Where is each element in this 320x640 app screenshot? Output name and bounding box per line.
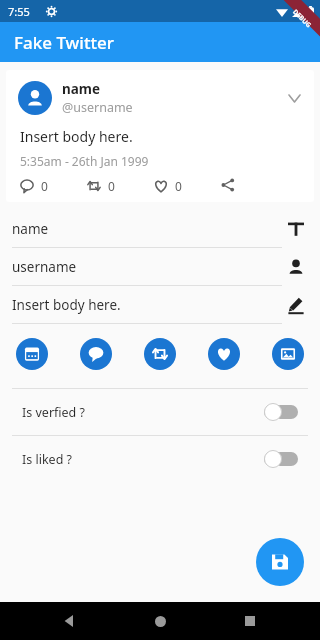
button[interactable]: Date (16, 338, 48, 370)
staticText: name (62, 80, 101, 98)
staticText: DEBUG (291, 7, 314, 30)
button[interactable]: Retweet (87, 178, 154, 194)
button[interactable]: Is verfied ? (0, 389, 320, 435)
staticText: 0 (108, 178, 115, 194)
button[interactable]: name (0, 210, 320, 248)
staticText: 5:35am - 26th Jan 1999 (20, 153, 149, 169)
button[interactable]: More options (282, 86, 306, 110)
staticText: @username (62, 99, 133, 116)
staticText: 7:55 (8, 4, 30, 19)
staticText: Insert body here. (12, 296, 286, 314)
button[interactable]: Save (256, 538, 304, 586)
button[interactable]: Comment (80, 338, 112, 370)
button[interactable]: Reply (20, 178, 87, 194)
button[interactable]: Like (154, 178, 221, 194)
button[interactable]: username (0, 248, 320, 286)
staticText: username (12, 258, 286, 276)
button[interactable]: Home (140, 602, 180, 640)
button[interactable]: Image (272, 338, 304, 370)
staticText: Fake Twitter (14, 31, 114, 54)
button[interactable]: Retweet count (144, 338, 176, 370)
staticText: name (12, 220, 286, 238)
button[interactable]: Back (50, 602, 90, 640)
button[interactable]: Like count (208, 338, 240, 370)
button[interactable]: Share (221, 178, 288, 192)
button[interactable]: Is liked ? (0, 436, 320, 482)
staticText: 0 (175, 178, 182, 194)
button[interactable]: Insert body here. (0, 286, 320, 324)
button[interactable]: Recents (230, 602, 270, 640)
staticText: Is verfied ? (22, 404, 264, 421)
staticText: Insert body here. (20, 127, 133, 146)
staticText: Is liked ? (22, 451, 264, 468)
button[interactable]: name (6, 70, 314, 202)
staticText: 0 (41, 178, 48, 194)
